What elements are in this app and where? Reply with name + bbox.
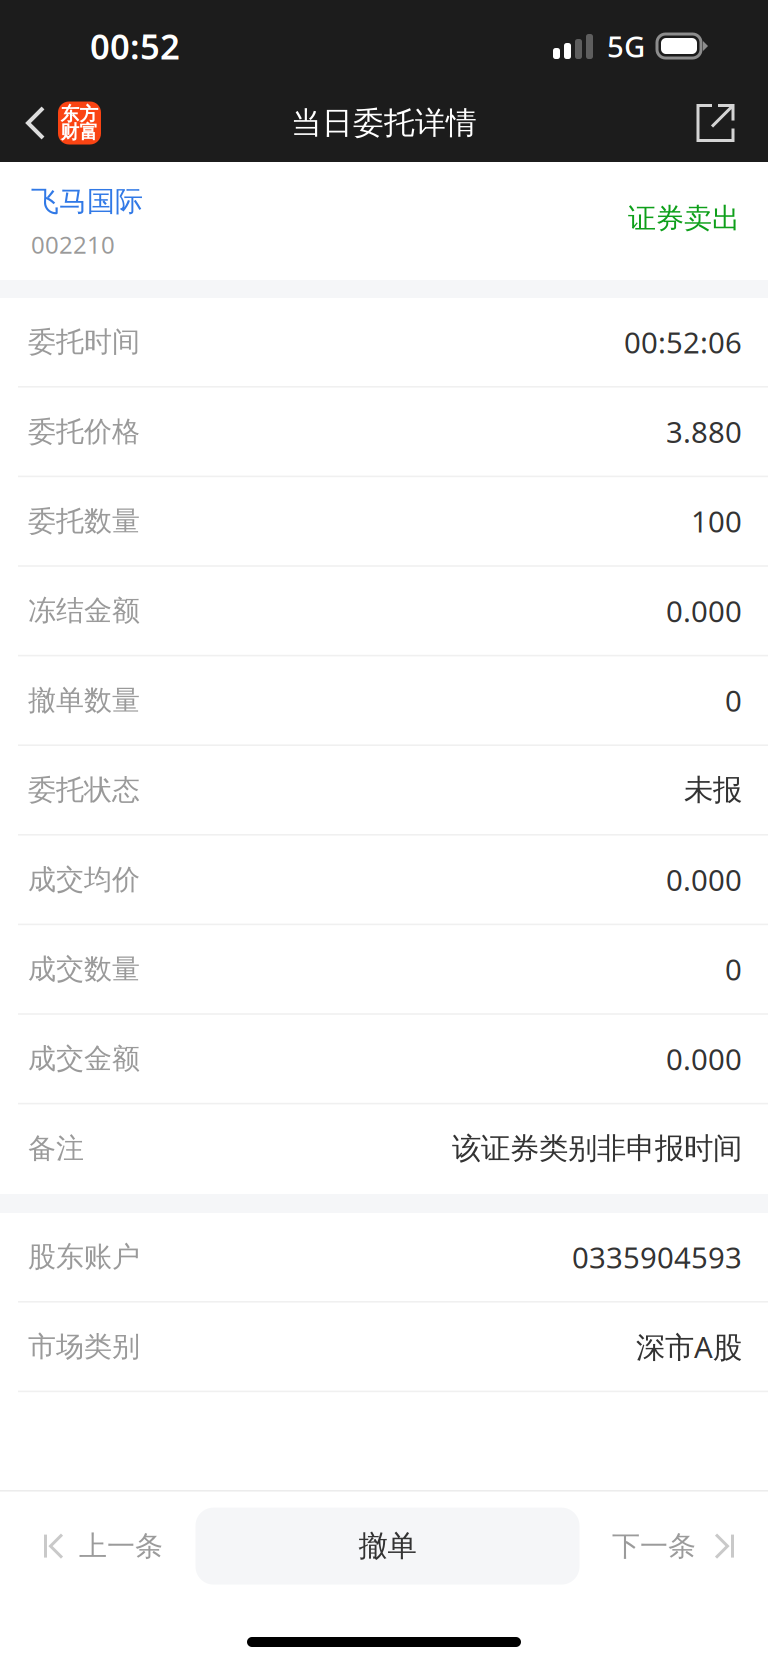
staticText: 0.000 [666, 860, 742, 899]
button[interactable]: 分享 [672, 80, 768, 166]
staticText: 委托状态 [28, 773, 140, 807]
staticText: 冻结金额 [28, 594, 140, 628]
staticText: 委托价格 [28, 414, 140, 449]
staticText: 上一条 [79, 1529, 163, 1563]
staticText: 财富 [60, 120, 98, 143]
staticText: 0.000 [666, 1039, 742, 1078]
staticText: 当日委托详情 [291, 104, 477, 142]
staticText: 成交数量 [28, 952, 140, 986]
button[interactable]: 上一条 [0, 1492, 183, 1601]
staticText: 证券卖出 [628, 201, 740, 236]
staticText: 委托数量 [28, 504, 140, 538]
staticText: 东方 [60, 102, 98, 125]
staticText: 委托时间 [28, 325, 140, 359]
staticText: 002210 [31, 229, 115, 260]
staticText: 未报 [684, 772, 742, 808]
staticText: 00:52:06 [624, 322, 742, 361]
staticText: 撤单 [358, 1528, 416, 1564]
staticText: 股东账户 [28, 1240, 140, 1274]
button[interactable]: 下一条 [592, 1492, 768, 1601]
staticText: 市场类别 [28, 1329, 140, 1364]
staticText: 飞马国际 [31, 184, 143, 219]
staticText: 0335904593 [572, 1237, 742, 1276]
staticText: 撤单数量 [28, 683, 140, 718]
staticText: 深市A股 [636, 1327, 742, 1366]
staticText: 5G [607, 26, 645, 65]
staticText: 成交金额 [28, 1042, 140, 1076]
button[interactable]: 返回 [0, 80, 111, 166]
staticText: 3.880 [666, 412, 742, 451]
staticText: 该证券类别非申报时间 [452, 1130, 742, 1166]
staticText: 0 [725, 681, 742, 720]
staticText: 0.000 [666, 591, 742, 630]
staticText: 00:52 [90, 23, 180, 69]
button[interactable]: 撤单 [195, 1508, 579, 1585]
staticText: 100 [691, 502, 742, 541]
staticText: 下一条 [612, 1529, 696, 1563]
staticText: 0 [725, 950, 742, 989]
staticText: 备注 [28, 1131, 84, 1166]
staticText: 成交均价 [28, 862, 140, 897]
